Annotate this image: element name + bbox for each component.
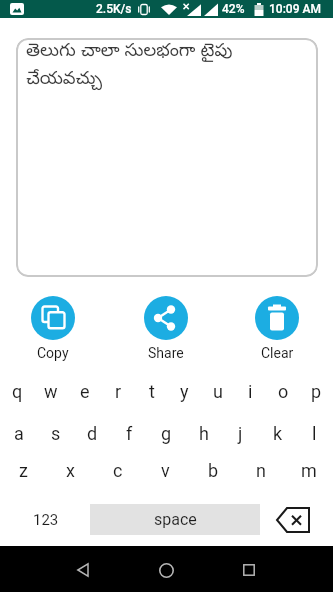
staticText: r (115, 381, 122, 402)
button[interactable]: t (135, 371, 168, 411)
staticText: m (301, 460, 317, 481)
button[interactable]: k (259, 413, 296, 453)
button[interactable]: b (189, 450, 237, 490)
staticText: s (51, 423, 61, 444)
button[interactable]: తెలుగు చాలా సులభంగా టైపు చేయవచ్చు (16, 38, 318, 277)
staticText: b (208, 460, 219, 481)
button[interactable]: y (168, 371, 201, 411)
staticText: g (161, 423, 172, 444)
button[interactable]: Clear (232, 296, 322, 361)
staticText: h (199, 423, 209, 444)
button[interactable]: r (102, 371, 135, 411)
button[interactable]: a (0, 413, 37, 453)
staticText: d (87, 423, 98, 444)
button[interactable]: j (222, 413, 259, 453)
staticText: n (256, 460, 266, 481)
button[interactable]: q (0, 371, 34, 411)
button[interactable]: v (141, 450, 189, 490)
button[interactable]: p (300, 371, 333, 411)
button[interactable]: o (267, 371, 300, 411)
button[interactable]: z (0, 450, 47, 490)
staticText: v (161, 460, 170, 481)
staticText: తెలుగు చాలా సులభంగా టైపు చేయవచ్చు (26, 40, 233, 93)
button[interactable]: w (34, 371, 68, 411)
staticText: y (180, 381, 189, 402)
button[interactable]: d (74, 413, 111, 453)
staticText: l (312, 423, 317, 444)
staticText: z (19, 460, 28, 481)
staticText: o (278, 381, 289, 402)
staticText: t (149, 381, 155, 402)
button[interactable]: i (234, 371, 267, 411)
staticText: k (273, 423, 283, 444)
button[interactable]: Copy (8, 296, 98, 361)
staticText: a (14, 423, 24, 444)
button[interactable] (63, 550, 103, 590)
staticText: 10:09 AM (269, 2, 321, 16)
button[interactable]: g (148, 413, 185, 453)
staticText: u (213, 381, 223, 402)
button[interactable]: space (90, 504, 260, 535)
button[interactable]: h (185, 413, 222, 453)
staticText: Copy (37, 345, 69, 361)
button[interactable]: c (94, 450, 141, 490)
button[interactable]: e (68, 371, 102, 411)
staticText: c (113, 460, 123, 481)
button[interactable]: u (201, 371, 234, 411)
button[interactable]: f (111, 413, 148, 453)
staticText: e (80, 381, 90, 402)
staticText: Share (148, 345, 184, 361)
staticText: 123 (33, 511, 59, 529)
button[interactable]: Share (121, 296, 211, 361)
staticText: space (154, 510, 197, 529)
button[interactable] (229, 550, 269, 590)
button[interactable]: x (47, 450, 94, 490)
staticText: w (44, 381, 58, 402)
staticText: Clear (261, 345, 294, 361)
staticText: i (248, 381, 253, 402)
staticText: 2.5K/s (96, 2, 132, 16)
staticText: j (238, 423, 243, 444)
button[interactable] (146, 550, 186, 590)
staticText: q (12, 381, 23, 402)
button[interactable]: m (285, 450, 333, 490)
button[interactable] (272, 502, 314, 538)
button[interactable]: n (237, 450, 285, 490)
staticText: 42% (222, 2, 245, 16)
staticText: x (66, 460, 75, 481)
button[interactable]: 123 (13, 504, 79, 535)
button[interactable]: l (296, 413, 333, 453)
staticText: f (126, 423, 133, 444)
staticText: p (311, 381, 322, 402)
button[interactable]: s (37, 413, 74, 453)
